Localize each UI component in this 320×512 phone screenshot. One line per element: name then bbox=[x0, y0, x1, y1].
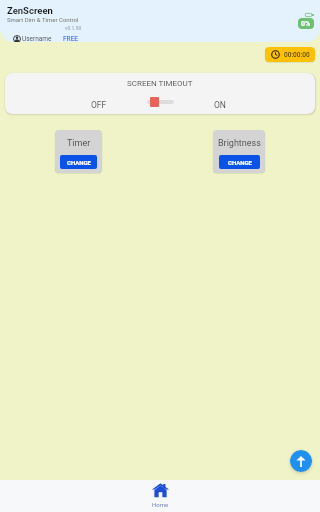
button[interactable]: Home bbox=[128, 480, 193, 511]
button[interactable]: Scroll to top bbox=[290, 450, 312, 472]
staticText: CHANGE bbox=[228, 159, 252, 166]
staticText: Username bbox=[22, 35, 52, 42]
staticText: SCREEN TIMEOUT bbox=[127, 79, 193, 88]
button[interactable]: Screen timeout slider bbox=[147, 95, 174, 109]
staticText: Home bbox=[152, 501, 169, 508]
button[interactable]: CHANGE bbox=[60, 155, 97, 169]
staticText: CHANGE bbox=[67, 159, 91, 166]
button[interactable]: Username bbox=[13, 35, 78, 42]
staticText: Smart Dim & Timer Control bbox=[7, 16, 79, 23]
button[interactable]: Timer bbox=[265, 47, 315, 62]
staticText: Brightness bbox=[218, 138, 261, 149]
staticText: 0% bbox=[301, 20, 311, 28]
staticText: OFF bbox=[91, 100, 107, 110]
staticText: ON bbox=[214, 100, 226, 110]
staticText: 00:00:00 bbox=[284, 51, 310, 59]
staticText: FREE bbox=[63, 35, 78, 42]
button[interactable]: CHANGE bbox=[219, 155, 260, 169]
staticText: v0.1.90 bbox=[65, 25, 82, 31]
button[interactable]: Battery level bbox=[298, 18, 314, 29]
staticText: Timer bbox=[67, 138, 91, 149]
staticText: ZenScreen bbox=[7, 5, 53, 16]
